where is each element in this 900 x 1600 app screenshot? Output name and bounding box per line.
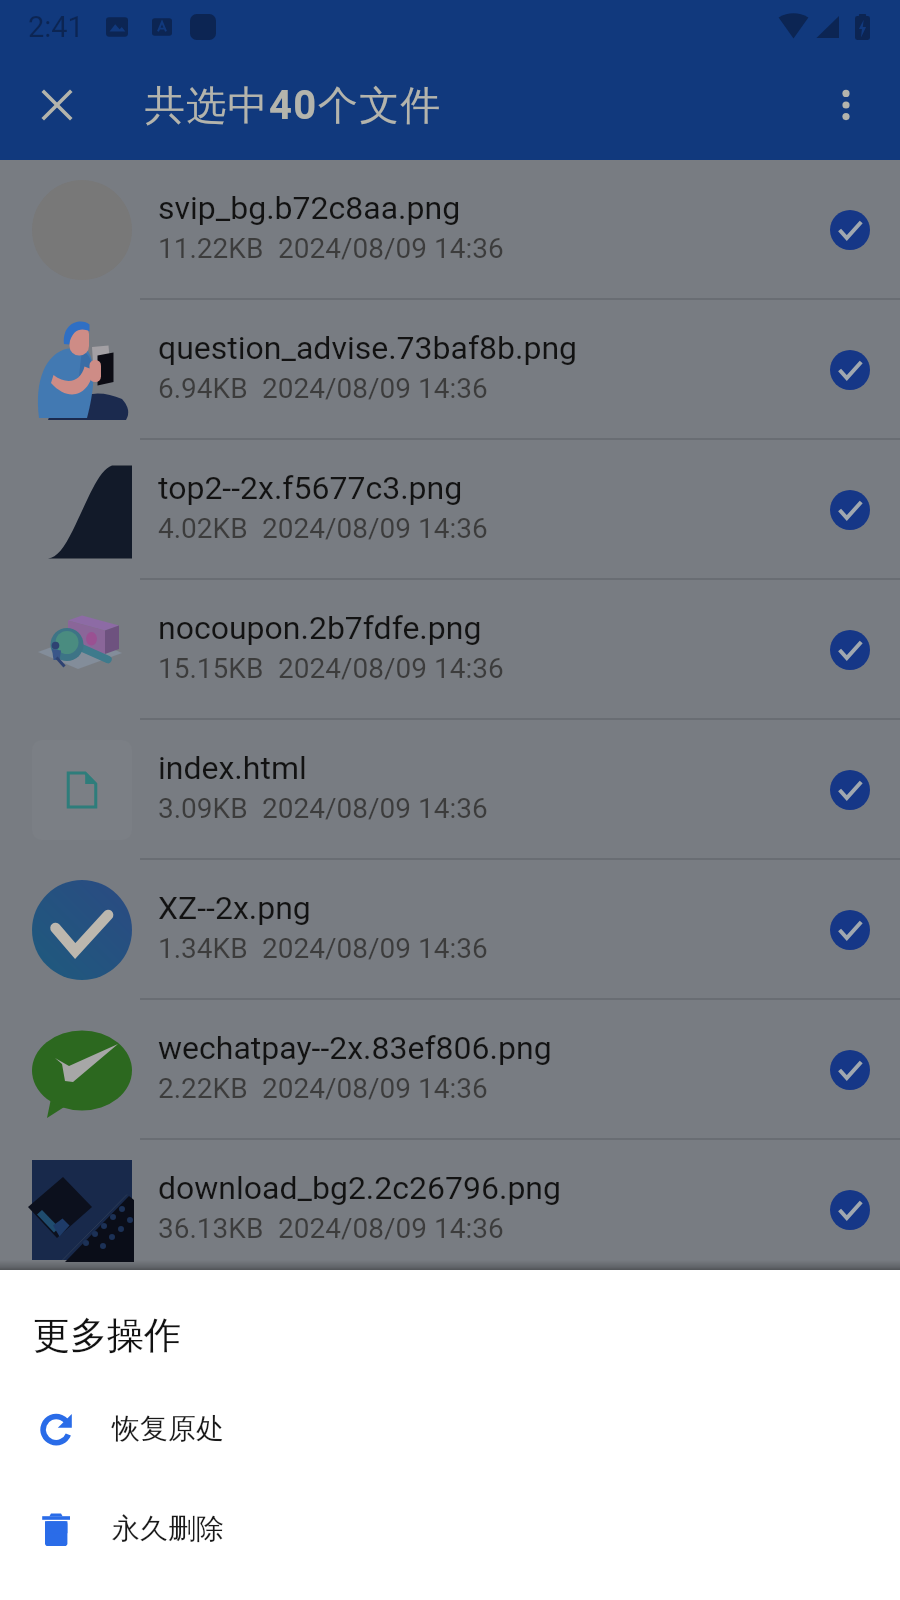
staticText: nocoupon.2b7fdfe.png: [158, 609, 482, 647]
staticText: 2024/08/09 14:36: [262, 932, 488, 965]
button[interactable]: question_advise.73baf8b.png: [0, 300, 900, 440]
staticText: 2024/08/09 14:36: [278, 652, 504, 685]
staticText: index.html: [158, 749, 307, 787]
button[interactable]: Selected: [810, 190, 890, 270]
button[interactable]: Selected: [810, 1170, 890, 1250]
staticText: question_advise.73baf8b.png: [158, 329, 578, 367]
staticText: top2--2x.f5677c3.png: [158, 469, 463, 507]
staticText: 2024/08/09 14:36: [278, 232, 504, 265]
button[interactable]: Close: [27, 75, 87, 135]
button[interactable]: download_bg2.2c26796.png: [0, 1140, 900, 1280]
button[interactable]: top2--2x.f5677c3.png: [0, 440, 900, 580]
staticText: 1.34KB: [158, 932, 248, 965]
button[interactable]: XZ--2x.png: [0, 860, 900, 1000]
staticText: 2024/08/09 14:36: [278, 1212, 504, 1245]
staticText: 11.22KB: [158, 232, 264, 265]
button[interactable]: index.html: [0, 720, 900, 860]
button[interactable]: wechatpay--2x.83ef806.png: [0, 1000, 900, 1140]
staticText: 2024/08/09 14:36: [262, 372, 488, 405]
staticText: 个文件: [318, 80, 442, 130]
button[interactable]: More options: [814, 73, 878, 137]
button[interactable]: Selected: [810, 610, 890, 690]
staticText: 3.09KB: [158, 792, 248, 825]
staticText: 2:41: [28, 10, 84, 44]
button[interactable]: 恢复原处: [0, 1378, 900, 1478]
staticText: 15.15KB: [158, 652, 264, 685]
button[interactable]: svip_bg.b72c8aa.png: [0, 160, 900, 300]
staticText: XZ--2x.png: [158, 889, 311, 927]
staticText: svip_bg.b72c8aa.png: [158, 189, 461, 227]
button[interactable]: Selected: [810, 750, 890, 830]
staticText: 36.13KB: [158, 1212, 264, 1245]
staticText: 2024/08/09 14:36: [262, 1072, 488, 1105]
staticText: 永久删除: [112, 1511, 224, 1546]
button[interactable]: Selected: [810, 330, 890, 410]
staticText: 2024/08/09 14:36: [262, 792, 488, 825]
button[interactable]: Selected: [810, 890, 890, 970]
staticText: 共选中: [145, 80, 269, 130]
staticText: 6.94KB: [158, 372, 248, 405]
button[interactable]: Selected: [810, 1030, 890, 1110]
staticText: 40: [269, 82, 318, 129]
staticText: download_bg2.2c26796.png: [158, 1169, 561, 1207]
staticText: 恢复原处: [112, 1411, 224, 1446]
button[interactable]: nocoupon.2b7fdfe.png: [0, 580, 900, 720]
button[interactable]: Selected: [810, 470, 890, 550]
button[interactable]: 永久删除: [0, 1478, 900, 1578]
staticText: 2024/08/09 14:36: [262, 512, 488, 545]
staticText: 4.02KB: [158, 512, 248, 545]
staticText: 更多操作: [33, 1312, 181, 1359]
staticText: 2.22KB: [158, 1072, 248, 1105]
staticText: wechatpay--2x.83ef806.png: [158, 1029, 552, 1067]
